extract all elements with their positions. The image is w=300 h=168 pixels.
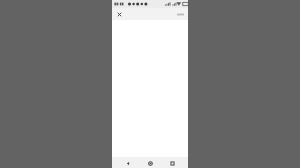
button[interactable]: More options — [174, 9, 186, 19]
button[interactable]: Recent apps — [167, 158, 177, 168]
button[interactable]: Close — [114, 9, 124, 19]
button[interactable]: Home — [145, 158, 155, 168]
button[interactable]: Back — [123, 158, 133, 168]
